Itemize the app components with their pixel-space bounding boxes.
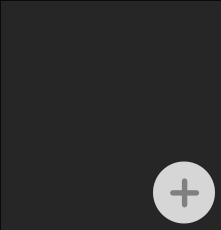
button[interactable]: Add — [153, 161, 215, 223]
